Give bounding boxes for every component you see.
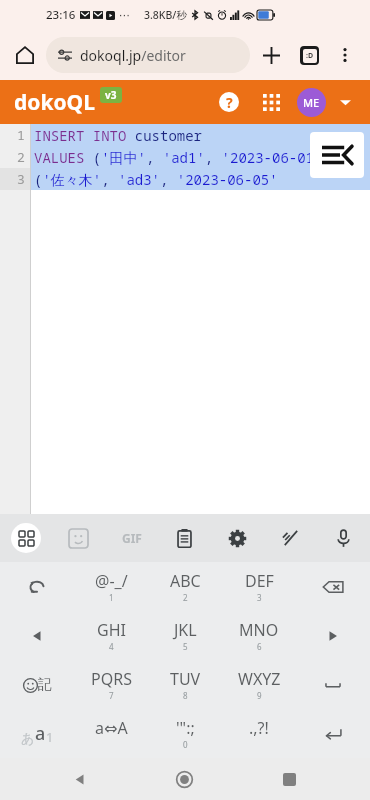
staticText: MNO [239,619,279,641]
staticText: '":; [176,717,195,739]
button[interactable]: Home [160,758,208,800]
staticText: 3 [17,170,25,188]
staticText: dokoql.jp/editor [80,46,186,65]
button[interactable]: DEF [222,562,296,611]
staticText: 4 [109,641,114,652]
button[interactable]: Handwriting [264,514,317,562]
button[interactable]: Back [56,758,104,800]
staticText: :D [306,51,314,61]
button[interactable]: 記 [0,660,74,709]
button[interactable]: .,?! [222,709,296,758]
button[interactable]: Recents [265,758,313,800]
staticText: PQRS [91,668,132,690]
staticText: 2 [17,148,25,166]
button[interactable]: Stickers [52,514,105,562]
staticText: 0 [183,739,188,750]
staticText: ⋯ [119,9,130,22]
button[interactable]: Cursor right [296,611,370,660]
button[interactable]: Account menu [334,91,356,113]
button[interactable]: dokoql.jp/editor [46,37,250,73]
staticText: .,?! [249,717,269,739]
button[interactable]: TUV [148,660,222,709]
button[interactable]: Settings [211,514,264,562]
button[interactable]: Clipboard [158,514,211,562]
button[interactable]: '":; [148,709,222,758]
staticText: 5 [183,641,188,652]
button[interactable]: ABC [148,562,222,611]
staticText: 7 [109,690,114,701]
button[interactable]: Voice input [317,514,370,562]
staticText: GIF [122,530,142,546]
staticText: a [35,721,46,746]
button[interactable]: a⇔A [74,709,148,758]
staticText: 1 [17,126,25,144]
staticText: VALUES ('田中', 'ad1', '2023-06-01' [34,148,323,167]
button[interactable]: Home [8,38,42,72]
button[interactable]: Help [213,86,245,118]
button[interactable]: Apps [255,86,287,118]
staticText: 1 [46,728,54,746]
button[interactable]: Tabs [290,36,328,74]
staticText: 9 [257,690,262,701]
button[interactable]: Backspace [296,562,370,611]
staticText: TUV [170,668,201,690]
button[interactable]: @-_/ [74,562,148,611]
button[interactable]: dokoQL [14,88,95,117]
staticText: a⇔A [95,717,128,739]
staticText: 3.8KB/秒 [144,8,187,22]
button[interactable]: GHI [74,611,148,660]
button[interactable]: WXYZ [222,660,296,709]
staticText: 1 [109,592,114,603]
staticText: 6 [257,641,262,652]
staticText: WXYZ [238,668,281,690]
staticText: 記 [38,676,52,694]
staticText: あ [21,730,35,746]
button[interactable]: ME [297,88,326,117]
staticText: 23:16 [46,7,76,23]
staticText: INSERT INTO customer [34,126,202,145]
button[interactable]: JKL [148,611,222,660]
button[interactable]: Apps [0,514,52,562]
staticText: v3 [105,88,117,102]
button[interactable]: PQRS [74,660,148,709]
button[interactable]: GIF [105,514,158,562]
button[interactable]: Collapse panel [310,132,364,178]
staticText: ME [303,95,320,110]
staticText: ABC [170,570,201,592]
staticText: ('佐々木', 'ad3', '2023-06-05' [34,170,278,189]
staticText: 3 [257,592,262,603]
staticText: ? [226,93,233,112]
staticText: GHI [97,619,126,641]
button[interactable]: Undo [0,562,74,611]
button[interactable]: More options [328,38,362,72]
button[interactable]: Space [296,660,370,709]
button[interactable]: MNO [222,611,296,660]
button[interactable]: Enter [296,709,370,758]
staticText: JKL [174,619,197,641]
button[interactable]: あ [0,709,74,758]
staticText: 8 [183,690,188,701]
button[interactable]: Cursor left [0,611,74,660]
button[interactable]: New tab [252,36,290,74]
staticText: DEF [245,570,274,592]
staticText: @-_/ [95,570,128,592]
staticText: 2 [183,592,188,603]
